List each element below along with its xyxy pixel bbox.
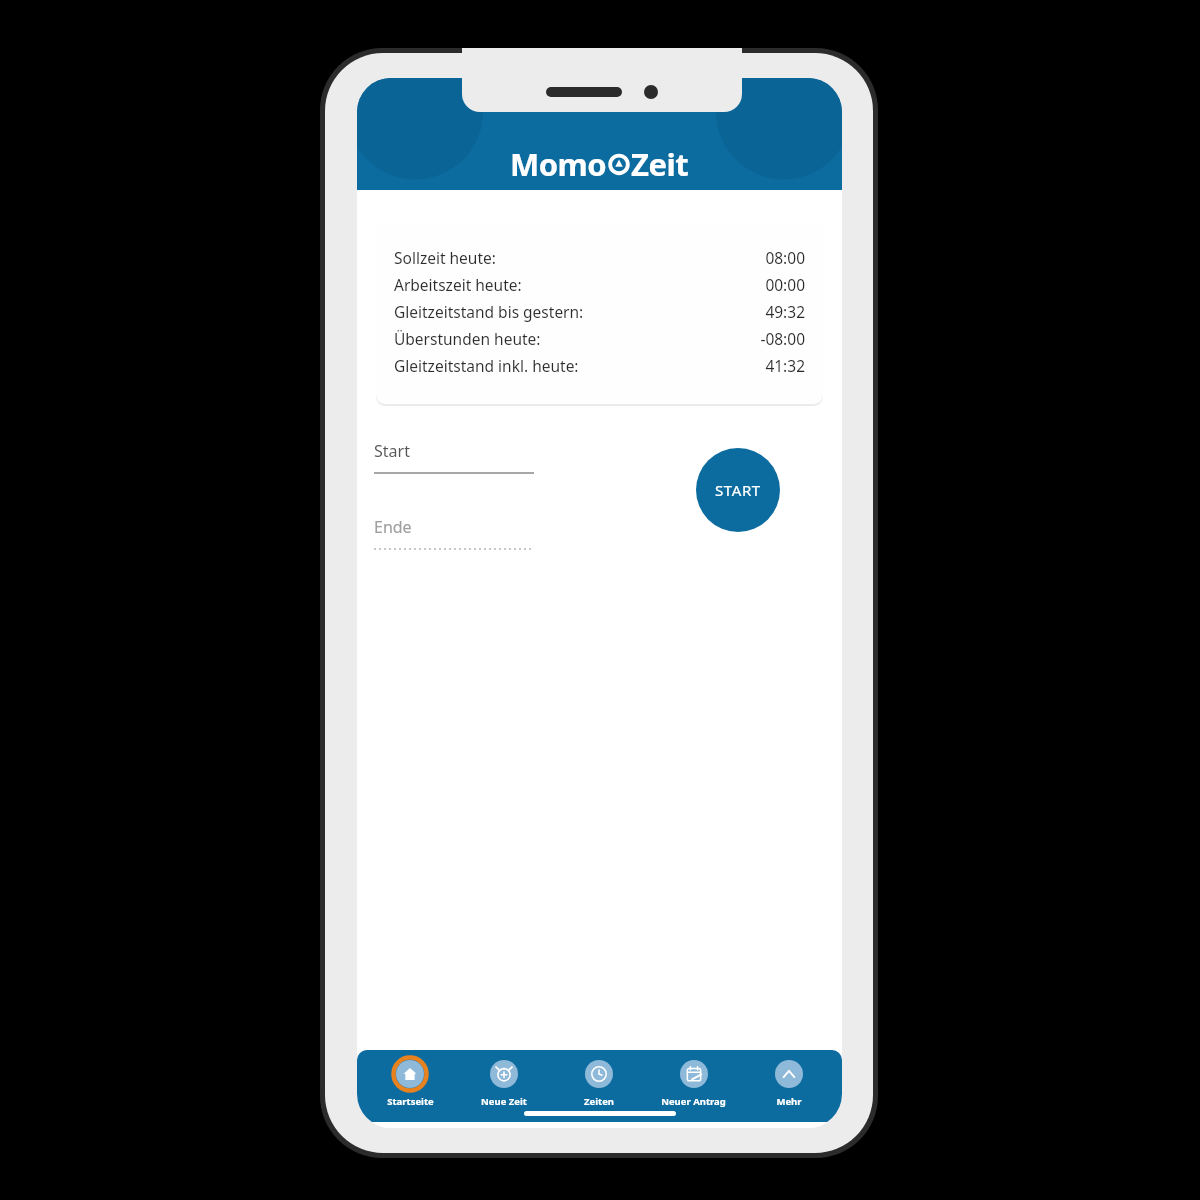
staticText: Gleitzeitstand bis gestern: xyxy=(394,301,584,322)
staticText: Überstunden heute: xyxy=(394,328,541,349)
staticText: -08:00 xyxy=(760,328,805,349)
button[interactable]: Neuer Antrag xyxy=(646,1050,741,1122)
button[interactable]: Start xyxy=(374,440,534,474)
staticText: 41:32 xyxy=(765,355,805,376)
staticText: 49:32 xyxy=(765,301,805,322)
staticText: Neuer Antrag xyxy=(661,1095,726,1108)
button[interactable]: START xyxy=(696,448,780,532)
staticText: Zeiten xyxy=(584,1095,614,1108)
staticText: Momo xyxy=(510,143,607,185)
staticText: START xyxy=(715,480,761,500)
staticText: Gleitzeitstand inkl. heute: xyxy=(394,355,579,376)
button[interactable]: Ende xyxy=(374,516,534,550)
staticText: Neue Zeit xyxy=(481,1095,527,1108)
staticText: Zeit xyxy=(631,143,689,185)
staticText: 00:00 xyxy=(765,274,805,295)
staticText: Startseite xyxy=(387,1095,434,1108)
button[interactable]: Neue Zeit xyxy=(457,1050,551,1122)
staticText: Start xyxy=(374,440,410,462)
staticText: Arbeitszeit heute: xyxy=(394,274,522,295)
button[interactable]: Zeiten xyxy=(551,1050,646,1122)
staticText: Mehr xyxy=(776,1095,802,1108)
staticText: 08:00 xyxy=(765,247,805,268)
button[interactable]: Mehr xyxy=(741,1050,836,1122)
staticText: Ende xyxy=(374,516,412,538)
staticText: Sollzeit heute: xyxy=(394,247,496,268)
button[interactable]: Startseite xyxy=(363,1050,457,1122)
